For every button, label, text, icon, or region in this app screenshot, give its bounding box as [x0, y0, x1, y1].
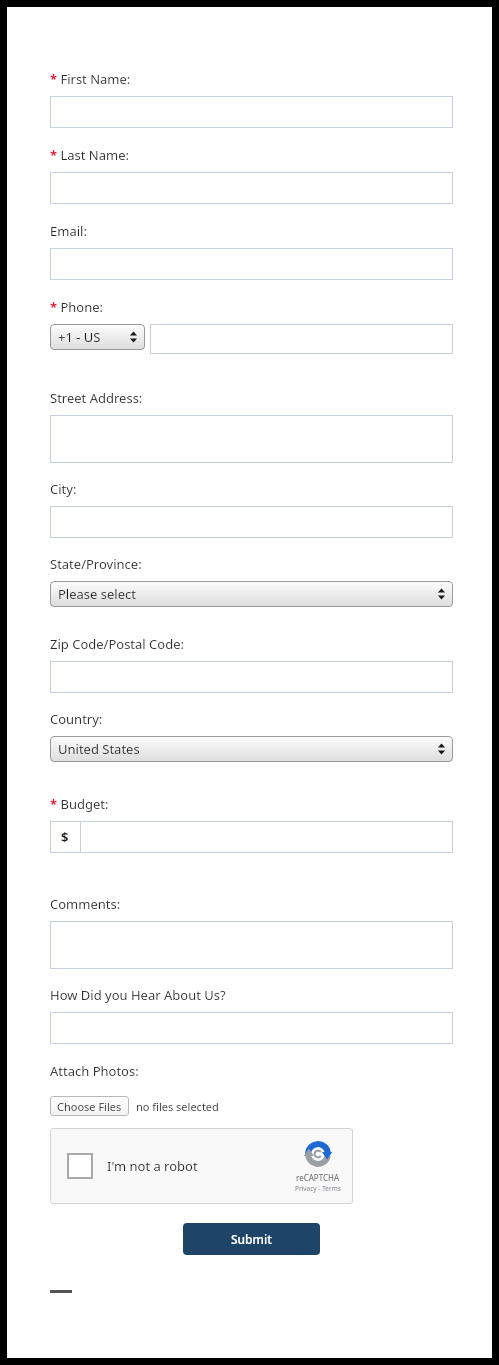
button[interactable] [50, 921, 453, 969]
staticText: Country: [50, 710, 103, 728]
staticText: State/Province: [50, 555, 142, 573]
staticText: City: [50, 480, 77, 498]
staticText: Submit [231, 1231, 272, 1247]
button[interactable]: Please select [50, 581, 453, 607]
staticText: +1 - US [58, 328, 101, 346]
button[interactable] [50, 172, 453, 204]
button[interactable]: +1 - US [50, 324, 145, 350]
staticText: * Budget: [50, 795, 109, 813]
staticText: no files selected [136, 1099, 219, 1114]
button[interactable] [81, 821, 453, 853]
staticText: Zip Code/Postal Code: [50, 635, 184, 653]
staticText: Comments: [50, 895, 121, 913]
staticText: Please select [58, 585, 136, 603]
staticText: Attach Photos: [50, 1062, 139, 1080]
staticText: reCAPTCHA [296, 1172, 340, 1183]
button[interactable]: United States [50, 736, 453, 762]
button[interactable] [50, 661, 453, 693]
staticText: United States [58, 740, 140, 758]
button[interactable]: Submit [183, 1223, 320, 1255]
button[interactable] [150, 324, 453, 354]
button[interactable] [50, 248, 453, 280]
staticText: * Last Name: [50, 146, 129, 164]
staticText: * First Name: [50, 70, 131, 88]
staticText: How Did you Hear About Us? [50, 986, 226, 1004]
button[interactable]: I'm not a robot reCAPTCHA [50, 1128, 353, 1204]
staticText: I'm not a robot [107, 1157, 198, 1175]
button[interactable]: Choose Files [50, 1096, 129, 1116]
staticText: $ [61, 828, 69, 846]
staticText: Privacy - Terms [295, 1184, 341, 1193]
button[interactable] [50, 506, 453, 538]
staticText: Street Address: [50, 389, 143, 407]
button[interactable] [50, 96, 453, 128]
staticText: Choose Files [57, 1099, 122, 1114]
button[interactable] [50, 1012, 453, 1044]
staticText: Email: [50, 222, 87, 240]
button[interactable] [50, 415, 453, 463]
button[interactable]: I'm not a robot checkbox [67, 1153, 93, 1179]
staticText: * Phone: [50, 298, 104, 316]
